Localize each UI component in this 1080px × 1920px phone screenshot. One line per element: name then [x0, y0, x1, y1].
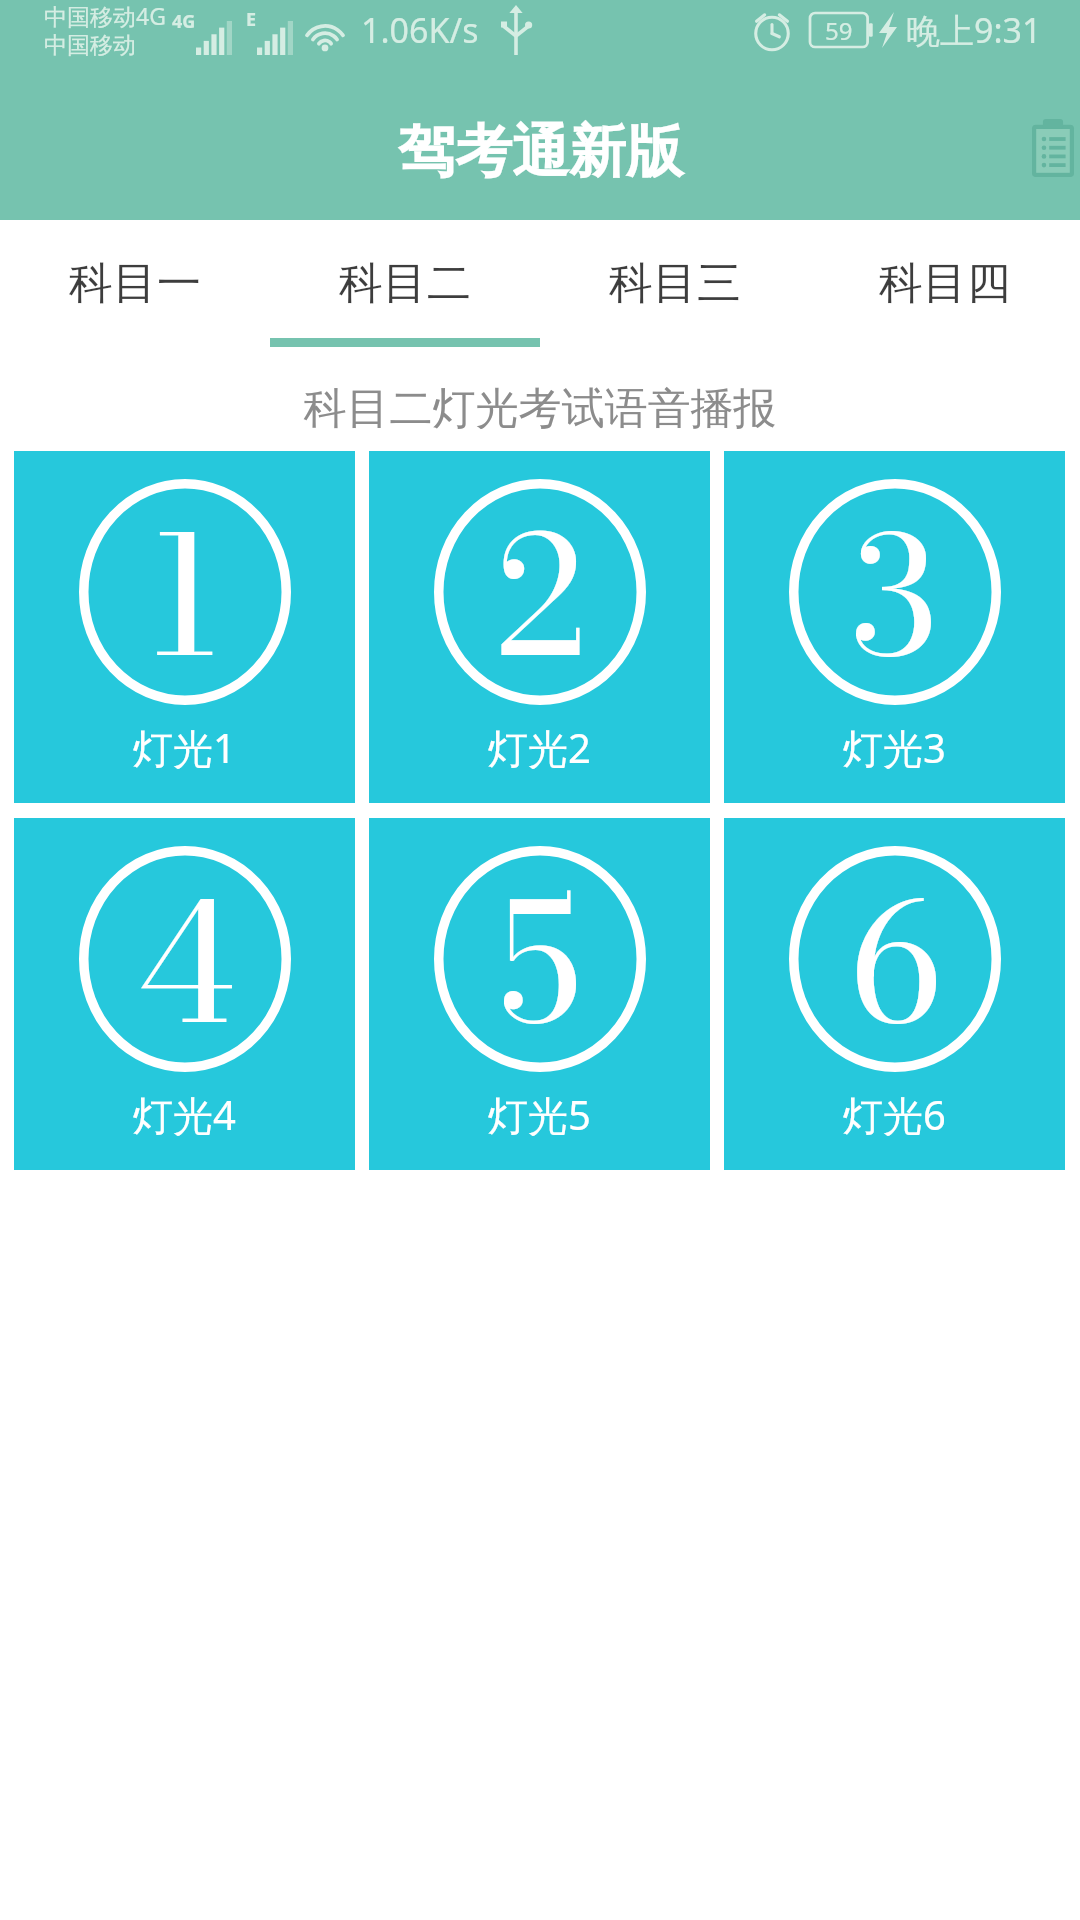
staticText: 59 [825, 14, 853, 47]
button[interactable]: 科目三 [540, 220, 810, 347]
staticText: 晚上9:31 [906, 7, 1042, 53]
button[interactable]: 6 [724, 818, 1065, 1170]
button[interactable]: Exam records [1015, 110, 1080, 186]
button[interactable]: 3 [724, 451, 1065, 803]
staticText: 灯光3 [843, 720, 946, 775]
staticText: 灯光4 [133, 1087, 236, 1142]
staticText: 5 [499, 837, 582, 1063]
staticText: 科目三 [609, 256, 741, 311]
staticText: 3 [852, 470, 938, 696]
staticText: 灯光6 [843, 1087, 946, 1142]
staticText: 科目四 [879, 256, 1011, 311]
staticText: 科目二灯光考试语音播报 [0, 382, 1080, 436]
staticText: 科目一 [69, 256, 201, 311]
button[interactable]: 科目二 [270, 220, 540, 347]
staticText: 4 [136, 837, 234, 1063]
staticText: 灯光1 [133, 720, 236, 775]
button[interactable]: 5 [369, 818, 710, 1170]
button[interactable]: 科目四 [810, 220, 1080, 347]
staticText: 灯光5 [488, 1087, 591, 1142]
staticText: 中国移动 [44, 31, 136, 60]
staticText: 1 [149, 470, 221, 696]
staticText: 科目二 [339, 256, 471, 311]
button[interactable]: 2 [369, 451, 710, 803]
staticText: 4G [172, 9, 196, 34]
staticText: 2 [495, 470, 586, 696]
button[interactable]: 4 [14, 818, 355, 1170]
staticText: 6 [849, 837, 941, 1063]
staticText: 中国移动4G [44, 0, 166, 31]
button[interactable]: 科目一 [0, 220, 270, 347]
staticText: 1.06K/s [361, 7, 479, 53]
button[interactable]: 1 [14, 451, 355, 803]
staticText: 灯光2 [488, 720, 591, 775]
staticText: 驾考通新版 [398, 116, 683, 188]
staticText: E [246, 7, 257, 32]
